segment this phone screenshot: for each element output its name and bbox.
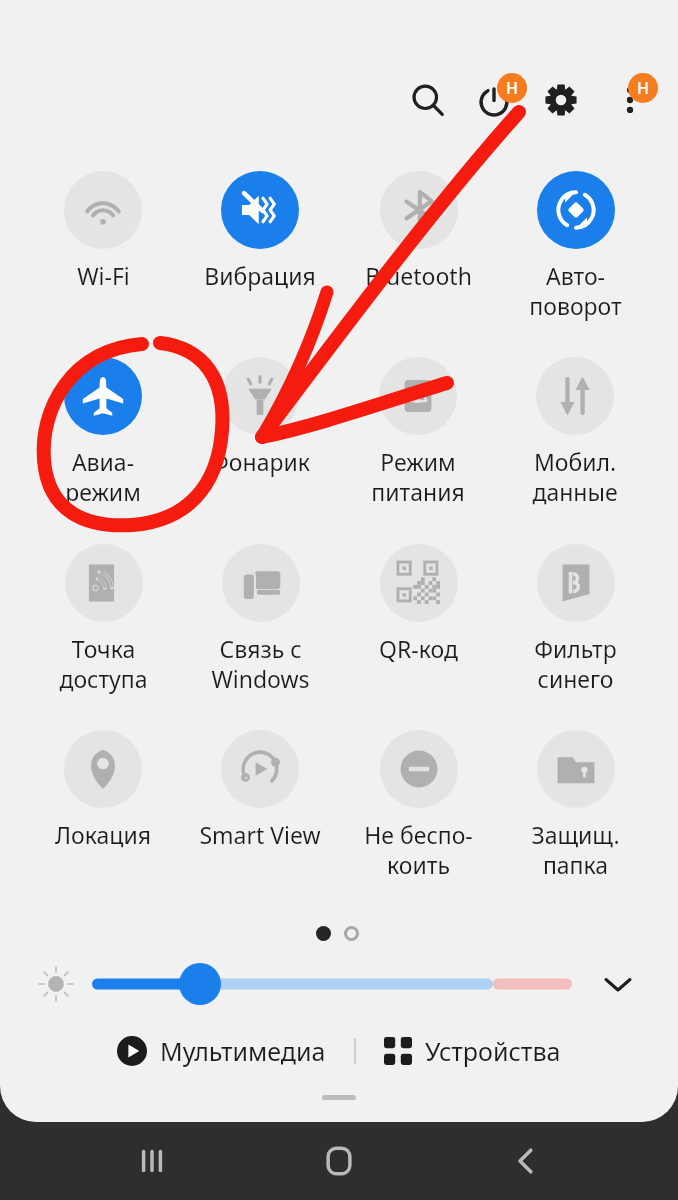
button[interactable]: Brightness (30, 958, 82, 1010)
button[interactable]: Brightness slider (92, 962, 572, 1006)
staticText: Фонарик (210, 446, 310, 477)
staticText: Точка доступа (59, 633, 148, 694)
staticText: Связь с Windows (211, 633, 310, 694)
button[interactable]: Settings (533, 72, 589, 128)
staticText: Авиа- режим (65, 446, 141, 507)
staticText: Авто- поворот (529, 260, 622, 321)
button[interactable]: Back (491, 1126, 561, 1196)
button[interactable]: Search (400, 72, 456, 128)
button[interactable]: Home (304, 1126, 374, 1196)
button[interactable]: Recent apps (117, 1126, 187, 1196)
button[interactable]: Не беспо- коить (344, 730, 492, 882)
button[interactable]: Expand (592, 958, 644, 1010)
button[interactable]: Power (466, 72, 522, 128)
button[interactable]: Bluetooth (344, 171, 492, 323)
button[interactable]: Авто- поворот (501, 171, 649, 323)
staticText: Не беспо- коить (364, 819, 473, 880)
staticText: Smart View (199, 819, 321, 850)
staticText: QR-код (379, 633, 458, 664)
button[interactable]: Локация (29, 730, 177, 882)
staticText: Локация (55, 819, 151, 850)
staticText: Мультимедиа (160, 1034, 326, 1068)
staticText: Мобил. данные (532, 446, 618, 507)
button[interactable]: Мобил. данные (501, 357, 649, 509)
button[interactable]: Smart View (186, 730, 334, 882)
staticText: Вибрация (204, 260, 316, 291)
button[interactable]: Точка доступа (29, 544, 177, 696)
button[interactable]: Фильтр синего (501, 544, 649, 696)
button[interactable]: QR-код (344, 544, 492, 696)
button[interactable]: Связь с Windows (186, 544, 334, 696)
staticText: Режим питания (371, 446, 465, 507)
button[interactable]: Фонарик (186, 357, 334, 509)
button[interactable]: Устройства (374, 1026, 571, 1076)
button[interactable]: Мультимедиа (107, 1026, 336, 1076)
button[interactable]: More options (602, 72, 658, 128)
button[interactable]: Режим питания (344, 357, 492, 509)
staticText: Защищ. папка (531, 819, 620, 880)
staticText: H (637, 77, 649, 99)
button[interactable]: Вибрация (186, 171, 334, 323)
staticText: H (506, 77, 518, 99)
button[interactable]: Авиа- режим (29, 357, 177, 509)
staticText: Устройства (425, 1034, 561, 1068)
staticText: Фильтр синего (534, 633, 617, 694)
staticText: Bluetooth (365, 260, 472, 291)
staticText: Wi-Fi (77, 260, 130, 291)
button[interactable]: Wi-Fi (29, 171, 177, 323)
button[interactable]: Защищ. папка (501, 730, 649, 882)
